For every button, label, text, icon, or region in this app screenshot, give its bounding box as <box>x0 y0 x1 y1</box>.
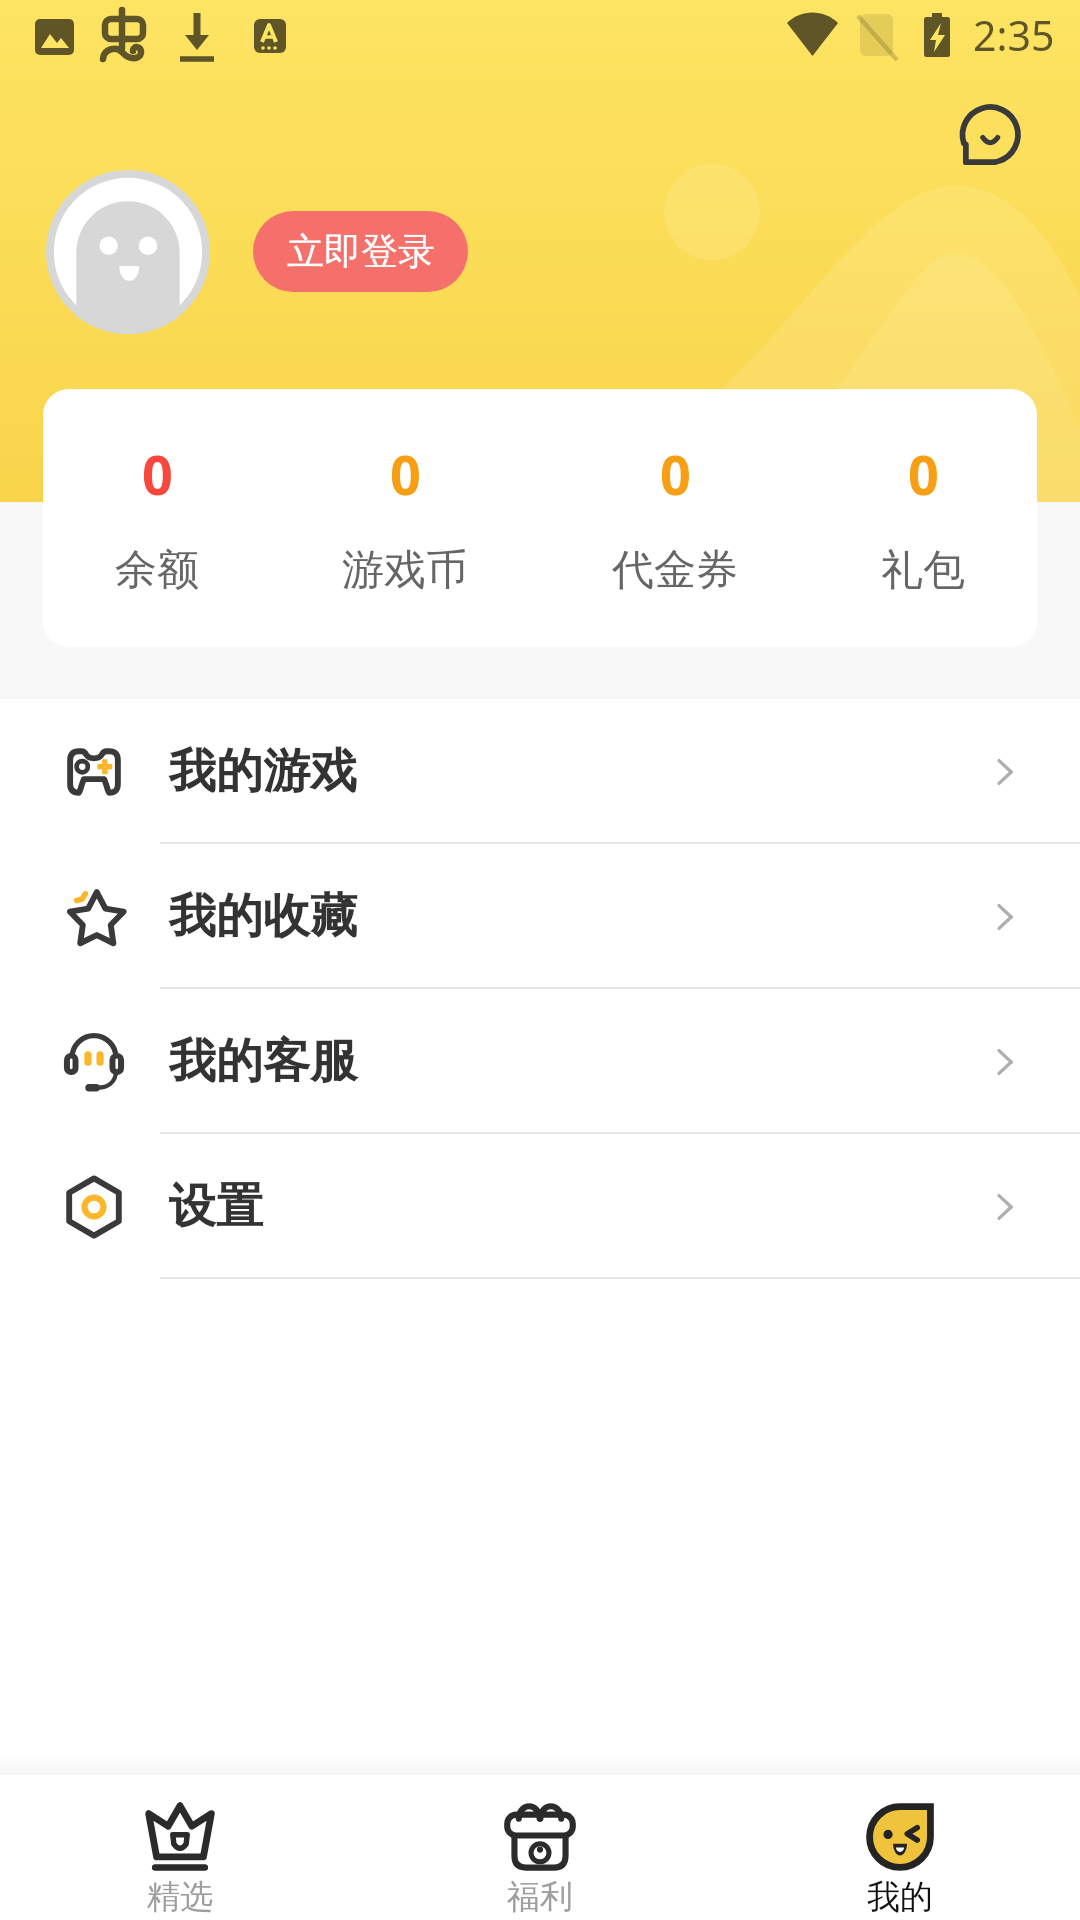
staticText: 0 <box>908 437 939 511</box>
button[interactable]: 0 <box>115 389 199 647</box>
staticText: 0 <box>390 437 421 511</box>
button[interactable]: 0 <box>612 389 738 647</box>
staticText: 立即登录 <box>287 228 435 275</box>
staticText: 0 <box>660 437 691 511</box>
staticText: 2:35 <box>973 7 1055 63</box>
button[interactable]: 福利 <box>360 1775 720 1920</box>
staticText: 福利 <box>507 1876 573 1918</box>
staticText: 精选 <box>147 1876 213 1918</box>
button[interactable]: Avatar <box>46 170 210 334</box>
staticText: 0 <box>142 437 173 511</box>
staticText: 余额 <box>115 544 199 597</box>
button[interactable]: Messages <box>937 88 1037 188</box>
button[interactable]: 我的客服 <box>0 989 1080 1134</box>
staticText: 设置 <box>169 1177 263 1236</box>
staticText: 我的游戏 <box>169 742 357 801</box>
button[interactable]: 我的游戏 <box>0 699 1080 844</box>
button[interactable]: 我的 <box>720 1775 1080 1920</box>
button[interactable]: 0 <box>881 389 965 647</box>
button[interactable]: 我的收藏 <box>0 844 1080 989</box>
button[interactable]: 0 <box>342 389 468 647</box>
button[interactable]: 精选 <box>0 1775 360 1920</box>
staticText: 代金券 <box>612 544 738 597</box>
staticText: 我的客服 <box>169 1032 357 1091</box>
button[interactable]: 立即登录 <box>253 211 468 292</box>
staticText: 游戏币 <box>342 544 468 597</box>
button[interactable]: 设置 <box>0 1134 1080 1279</box>
staticText: 我的 <box>867 1876 933 1918</box>
staticText: 礼包 <box>881 544 965 597</box>
staticText: 我的收藏 <box>169 887 357 946</box>
